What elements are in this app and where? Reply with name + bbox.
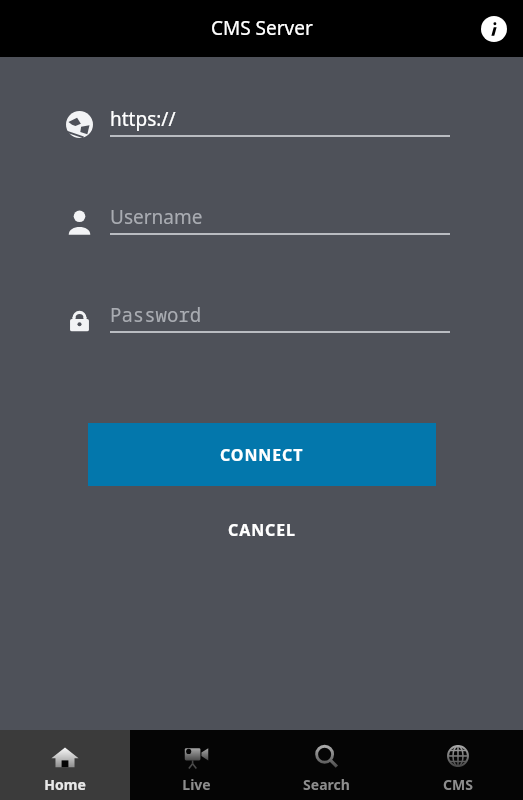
button[interactable]: Info bbox=[477, 12, 511, 46]
staticText: Home bbox=[44, 775, 86, 794]
button[interactable]: CONNECT bbox=[88, 423, 436, 486]
button[interactable]: https:// bbox=[0, 95, 523, 153]
button[interactable]: CMS bbox=[392, 730, 523, 800]
staticText: CMS Server bbox=[211, 15, 313, 41]
staticText: Live bbox=[182, 775, 211, 794]
staticText: Password bbox=[110, 302, 202, 328]
staticText: CANCEL bbox=[228, 519, 296, 541]
button[interactable]: Username bbox=[0, 193, 523, 251]
button[interactable]: Password bbox=[0, 291, 523, 349]
button[interactable]: Live bbox=[130, 730, 261, 800]
staticText: CMS bbox=[443, 775, 473, 794]
button[interactable]: Home bbox=[0, 730, 130, 800]
button[interactable]: Search bbox=[261, 730, 392, 800]
button[interactable]: CANCEL bbox=[88, 507, 436, 552]
staticText: CONNECT bbox=[220, 444, 304, 466]
staticText: https:// bbox=[110, 106, 176, 132]
staticText: Search bbox=[303, 775, 350, 794]
staticText: Username bbox=[110, 204, 203, 230]
